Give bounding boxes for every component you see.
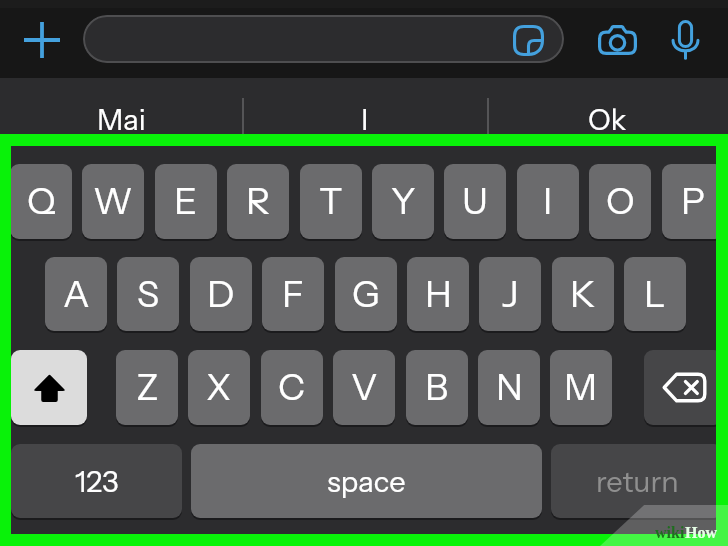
- staticText: N: [496, 365, 523, 410]
- staticText: 123: [75, 464, 119, 499]
- staticText: Mai: [97, 102, 146, 137]
- button[interactable]: Y: [372, 164, 434, 239]
- button[interactable]: I: [243, 93, 486, 145]
- staticText: return: [596, 464, 679, 499]
- button[interactable]: space: [191, 444, 542, 518]
- staticText: H: [425, 272, 452, 317]
- staticText: K: [570, 272, 596, 317]
- staticText: I: [361, 102, 369, 137]
- staticText: B: [425, 365, 449, 410]
- button[interactable]: Z: [116, 350, 178, 425]
- staticText: X: [206, 365, 232, 410]
- staticText: S: [137, 272, 160, 317]
- button[interactable]: B: [406, 350, 468, 425]
- button[interactable]: R: [227, 164, 289, 239]
- button[interactable]: M: [550, 350, 612, 425]
- button[interactable]: D: [190, 257, 252, 331]
- staticText: C: [278, 365, 306, 410]
- button[interactable]: C: [261, 350, 323, 425]
- button[interactable]: U: [444, 164, 506, 239]
- button[interactable]: W: [82, 164, 144, 239]
- button[interactable]: F: [262, 257, 324, 331]
- button[interactable]: Shift: [11, 350, 87, 425]
- staticText: T: [319, 179, 343, 224]
- staticText: U: [462, 179, 488, 224]
- button[interactable]: L: [624, 257, 686, 331]
- staticText: Y: [391, 179, 416, 224]
- button[interactable]: Add: [16, 14, 68, 66]
- button[interactable]: H: [407, 257, 469, 331]
- staticText: R: [246, 179, 270, 224]
- staticText: wiki: [655, 524, 685, 542]
- staticText: How: [685, 524, 717, 542]
- button[interactable]: G: [335, 257, 397, 331]
- button[interactable]: N: [478, 350, 540, 425]
- button[interactable]: Ok: [486, 93, 728, 145]
- staticText: space: [327, 464, 406, 499]
- button[interactable]: Camera: [592, 15, 642, 65]
- staticText: O: [606, 179, 635, 224]
- staticText: I: [543, 179, 553, 224]
- button[interactable]: A: [45, 257, 107, 331]
- button[interactable]: return: [551, 444, 723, 518]
- button[interactable]: O: [589, 164, 651, 239]
- staticText: M: [564, 365, 598, 410]
- staticText: V: [351, 365, 378, 410]
- staticText: F: [282, 272, 304, 317]
- button[interactable]: S: [117, 257, 179, 331]
- button[interactable]: T: [300, 164, 362, 239]
- staticText: P: [681, 179, 705, 224]
- button[interactable]: Microphone: [663, 17, 708, 62]
- staticText: Ok: [588, 102, 627, 137]
- button[interactable]: J: [479, 257, 541, 331]
- button[interactable]: Stickers: [508, 20, 548, 60]
- button[interactable]: [83, 15, 564, 63]
- staticText: J: [502, 272, 519, 317]
- button[interactable]: Backspace: [644, 350, 723, 425]
- button[interactable]: K: [552, 257, 614, 331]
- staticText: D: [207, 272, 235, 317]
- button[interactable]: E: [155, 164, 217, 239]
- button[interactable]: Q: [10, 164, 72, 239]
- button[interactable]: Mai: [0, 93, 243, 145]
- staticText: W: [93, 179, 133, 224]
- button[interactable]: 123: [11, 444, 182, 518]
- staticText: Z: [136, 365, 159, 410]
- button[interactable]: V: [333, 350, 395, 425]
- button[interactable]: P: [662, 164, 724, 239]
- staticText: E: [174, 179, 198, 224]
- staticText: L: [644, 272, 666, 317]
- button[interactable]: I: [517, 164, 579, 239]
- button[interactable]: X: [188, 350, 250, 425]
- staticText: Q: [27, 179, 56, 224]
- staticText: A: [63, 272, 90, 317]
- staticText: G: [352, 272, 380, 317]
